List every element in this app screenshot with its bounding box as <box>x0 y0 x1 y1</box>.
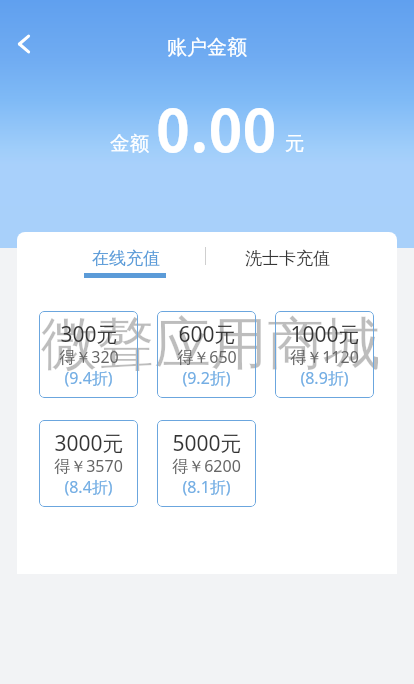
button[interactable]: 洗士卡充值 <box>230 232 345 280</box>
staticText: 1000元 <box>290 320 360 349</box>
staticText: 在线充值 <box>92 248 160 269</box>
button[interactable]: 1000元 <box>275 311 374 398</box>
button[interactable]: 3000元 <box>39 420 138 507</box>
staticText: 元 <box>285 131 305 156</box>
staticText: 得￥320 <box>59 346 119 368</box>
staticText: 得￥3570 <box>54 455 123 477</box>
staticText: (8.1折) <box>182 476 231 498</box>
staticText: 600元 <box>178 320 236 349</box>
button[interactable]: Back <box>4 24 44 64</box>
button[interactable]: 5000元 <box>157 420 256 507</box>
staticText: (8.9折) <box>300 367 349 389</box>
staticText: 洗士卡充值 <box>245 248 330 269</box>
staticText: 得￥1120 <box>290 346 359 368</box>
staticText: 300元 <box>60 320 118 349</box>
staticText: 0.00 <box>156 85 277 168</box>
button[interactable]: 600元 <box>157 311 256 398</box>
button[interactable]: 在线充值 <box>76 232 176 280</box>
staticText: (9.2折) <box>182 367 231 389</box>
button[interactable]: 300元 <box>39 311 138 398</box>
staticText: 微聱应用商城 <box>41 309 381 380</box>
staticText: 得￥6200 <box>172 455 241 477</box>
staticText: (9.4折) <box>64 367 113 389</box>
staticText: 得￥650 <box>177 346 237 368</box>
staticText: 3000元 <box>54 429 124 458</box>
staticText: 金额 <box>110 131 149 156</box>
staticText: 5000元 <box>172 429 242 458</box>
staticText: 账户金额 <box>167 35 247 60</box>
staticText: (8.4折) <box>64 476 113 498</box>
